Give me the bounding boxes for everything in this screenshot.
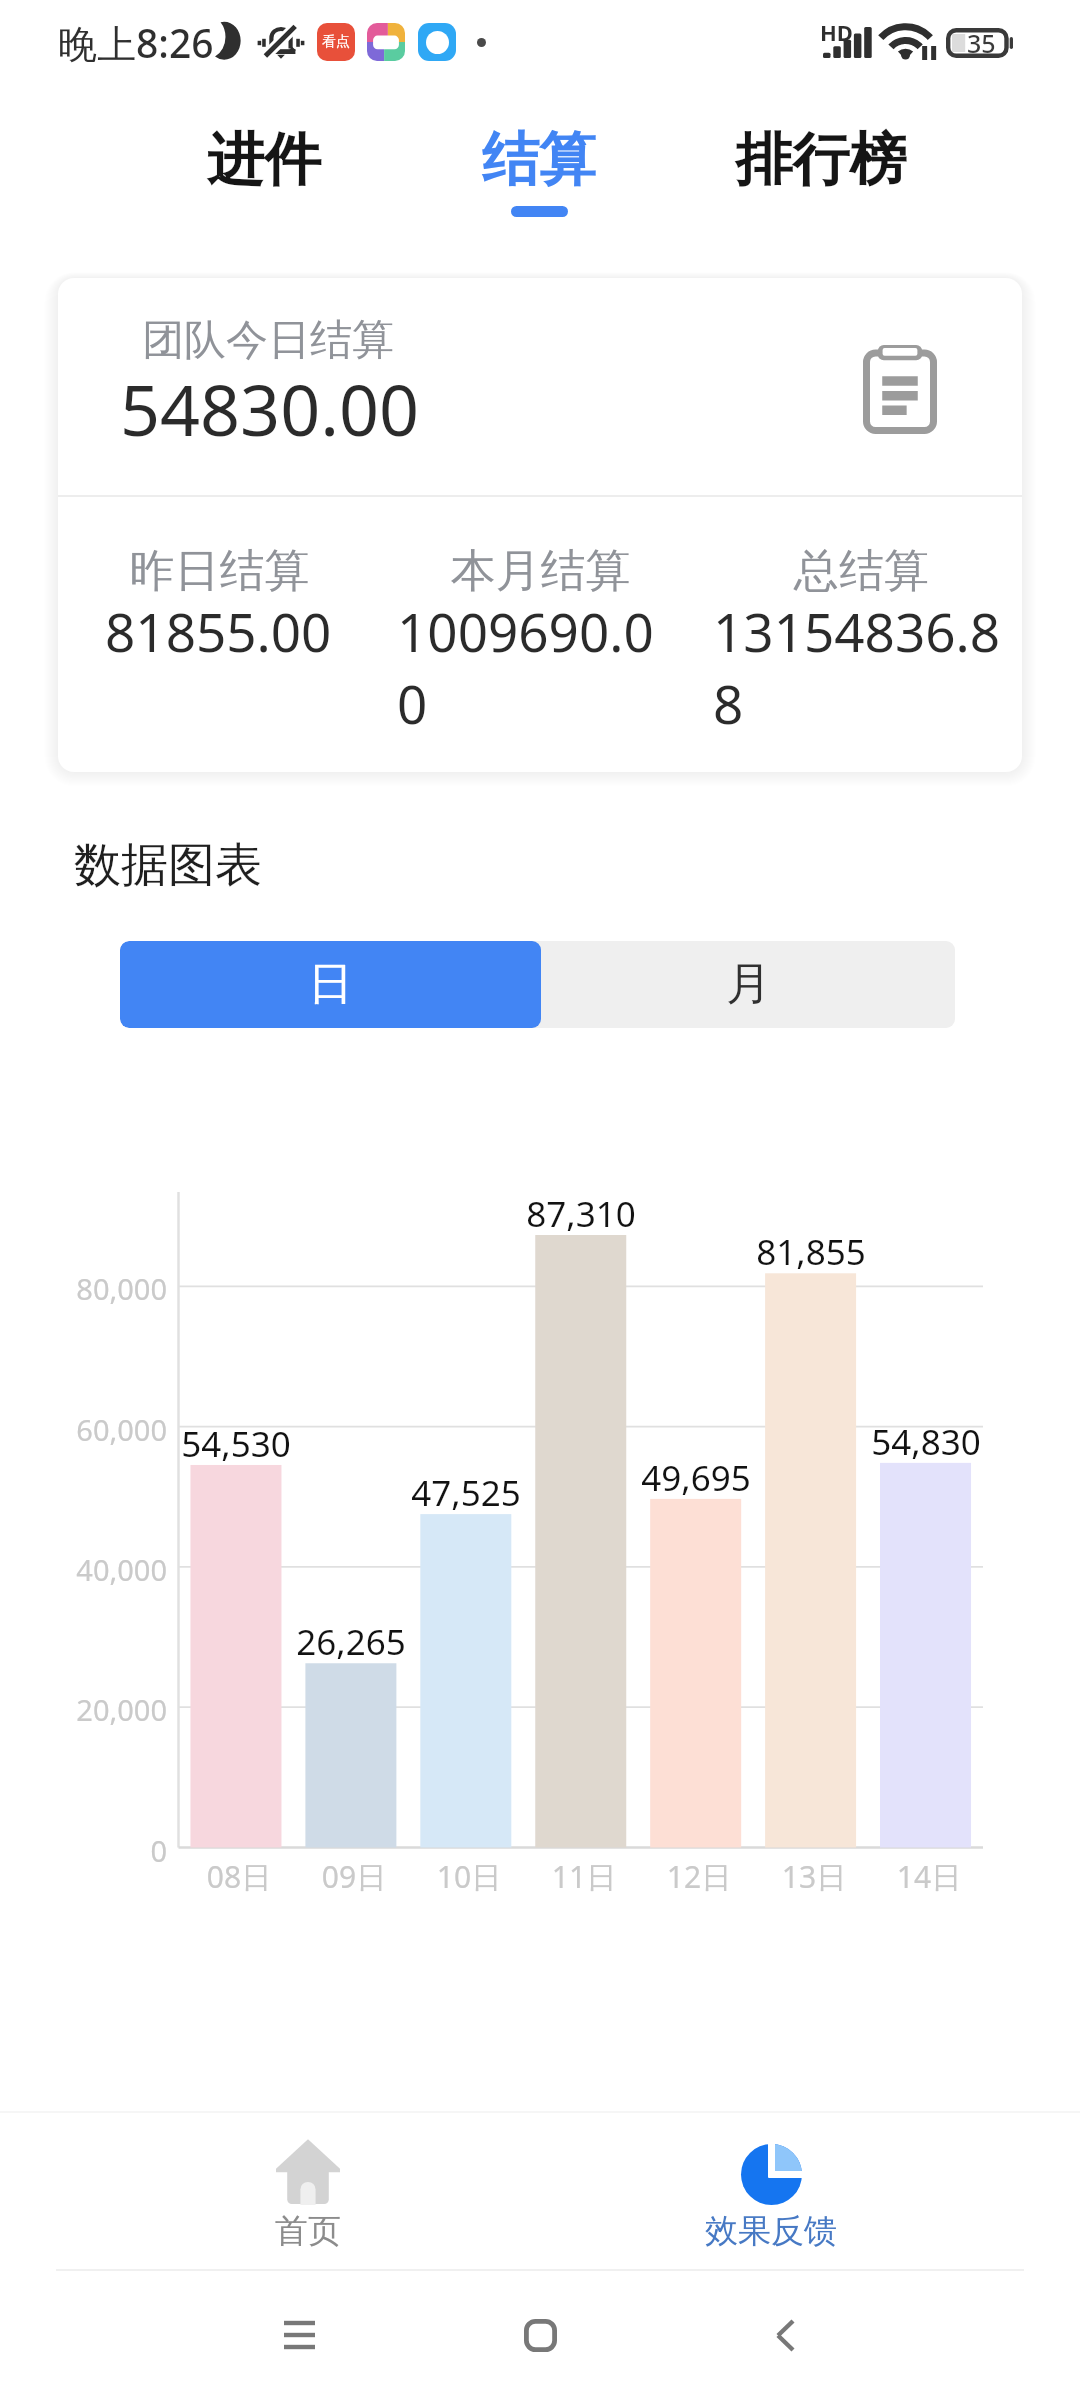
staticText: 13154836.8 8 xyxy=(713,595,1022,740)
staticText: 总结算 xyxy=(701,543,1022,600)
button[interactable]: 日 xyxy=(120,941,541,1028)
staticText: 月 xyxy=(726,956,771,1013)
staticText: 晚上8:26 xyxy=(58,16,214,69)
staticText: 0 xyxy=(3,1831,167,1870)
staticText: 首页 xyxy=(158,2210,458,2252)
staticText: 49,695 xyxy=(586,1454,806,1502)
staticText: 60,000 xyxy=(3,1410,167,1449)
button[interactable]: 效果反馈 xyxy=(621,2114,921,2268)
staticText: 54,830 xyxy=(816,1418,1036,1466)
button[interactable]: 首页 xyxy=(158,2114,458,2268)
staticText: 12日 xyxy=(589,1856,809,1897)
staticText: 团队今日结算 xyxy=(142,314,394,367)
staticText: 效果反馈 xyxy=(621,2210,921,2252)
button[interactable]: Home xyxy=(450,2275,630,2395)
staticText: 日 xyxy=(308,956,353,1013)
staticText: 47,525 xyxy=(356,1469,576,1517)
button[interactable]: 进件 xyxy=(134,105,394,223)
button[interactable]: 月 xyxy=(541,941,955,1028)
staticText: 1009690.0 0 xyxy=(397,595,727,740)
staticText: 35 xyxy=(967,26,996,60)
staticText: 81,855 xyxy=(701,1228,921,1276)
staticText: 81855.00 xyxy=(105,595,435,667)
staticText: 进件 xyxy=(134,124,394,196)
staticText: 排行榜 xyxy=(691,124,951,196)
staticText: 昨日结算 xyxy=(59,543,380,600)
staticText: 54830.00 xyxy=(120,361,420,456)
staticText: 本月结算 xyxy=(380,543,701,600)
staticText: 11日 xyxy=(474,1856,694,1897)
staticText: 87,310 xyxy=(471,1190,691,1238)
staticText: 40,000 xyxy=(3,1550,167,1589)
staticText: 20,000 xyxy=(3,1690,167,1729)
staticText: 80,000 xyxy=(3,1269,167,1308)
staticText: 08日 xyxy=(129,1856,349,1897)
staticText: 09日 xyxy=(244,1856,464,1897)
button[interactable]: Recents xyxy=(209,2275,389,2395)
staticText: 看点 xyxy=(322,33,350,51)
staticText: 结算 xyxy=(409,124,669,196)
button[interactable]: Back xyxy=(695,2275,875,2395)
staticText: 26,265 xyxy=(241,1618,461,1666)
button[interactable]: 结算明细 xyxy=(863,344,937,434)
button[interactable]: 结算 xyxy=(409,105,669,223)
staticText: 数据图表 xyxy=(74,836,262,895)
staticText: 14日 xyxy=(819,1856,1039,1897)
staticText: 54,530 xyxy=(126,1420,346,1468)
staticText: 13日 xyxy=(704,1856,924,1897)
button[interactable]: 排行榜 xyxy=(691,105,951,223)
staticText: HD xyxy=(820,17,853,47)
staticText: 10日 xyxy=(359,1856,579,1897)
